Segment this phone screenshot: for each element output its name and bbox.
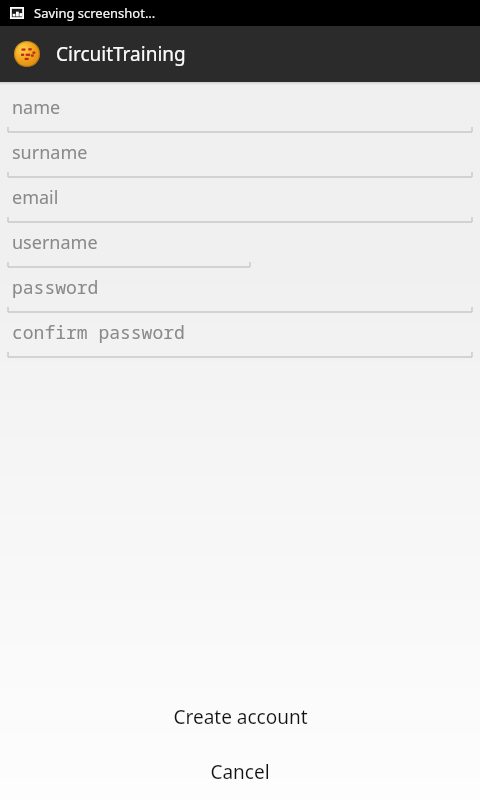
staticText: confirm password xyxy=(12,320,185,345)
staticText: email xyxy=(12,185,59,210)
staticText: password xyxy=(12,275,99,300)
button[interactable]: password xyxy=(0,269,480,314)
button[interactable]: CircuitTraining xyxy=(0,26,480,82)
button[interactable]: Create account xyxy=(0,693,480,741)
button[interactable]: Cancel xyxy=(0,748,480,796)
button[interactable]: name xyxy=(0,89,480,134)
staticText: surname xyxy=(12,140,88,165)
button[interactable]: surname xyxy=(0,134,480,179)
button[interactable]: confirm password xyxy=(0,314,480,359)
staticText: CircuitTraining xyxy=(56,41,186,67)
staticText: Cancel xyxy=(210,759,270,785)
button[interactable]: email xyxy=(0,179,480,224)
staticText: Saving screenshot... xyxy=(34,4,156,22)
staticText: name xyxy=(12,95,61,120)
staticText: Create account xyxy=(173,704,308,730)
staticText: username xyxy=(12,230,98,255)
button[interactable]: username xyxy=(0,224,480,269)
